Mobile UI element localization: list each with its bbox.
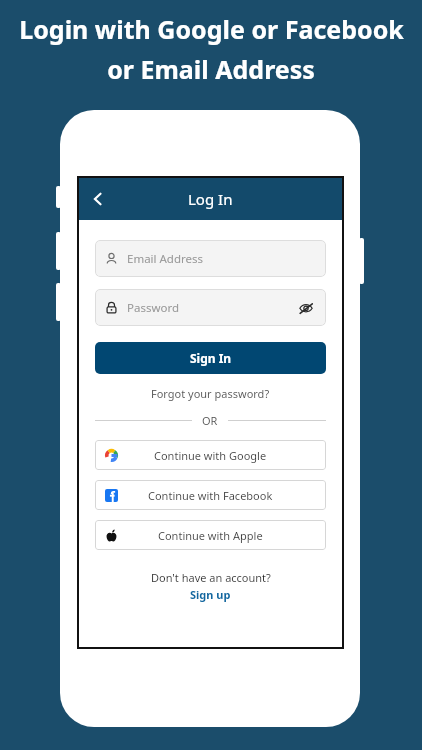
button[interactable]: Forgot your password? — [95, 386, 326, 401]
staticText: Sign up — [190, 587, 231, 602]
button[interactable]: Email Address — [95, 240, 326, 277]
staticText: Password — [127, 300, 180, 316]
button[interactable]: Continue with Google — [95, 440, 326, 470]
staticText: Continue with Google — [154, 448, 267, 463]
staticText: Email Address — [127, 251, 204, 267]
staticText: Login with Google or Facebook — [19, 12, 404, 46]
staticText: Don't have an account? — [151, 570, 271, 585]
button[interactable]: Password — [95, 289, 326, 326]
staticText: OR — [202, 413, 218, 428]
staticText: or Email Address — [107, 52, 315, 86]
button[interactable]: Continue with Apple — [95, 520, 326, 550]
button[interactable]: Toggle password visibility — [296, 298, 316, 318]
button[interactable]: Continue with Facebook — [95, 480, 326, 510]
staticText: Forgot your password? — [151, 386, 270, 401]
staticText: Continue with Apple — [158, 528, 263, 543]
staticText: Sign In — [190, 350, 232, 366]
staticText: Log In — [188, 189, 233, 209]
button[interactable]: Sign In — [95, 342, 326, 374]
staticText: Continue with Facebook — [148, 488, 273, 503]
button[interactable]: Back — [79, 180, 117, 218]
button[interactable]: Sign up — [190, 587, 231, 602]
